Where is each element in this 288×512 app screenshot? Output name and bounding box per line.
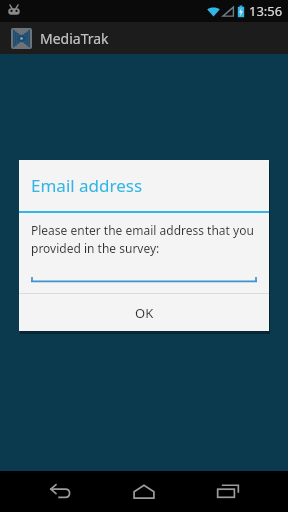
staticText: Email address [31, 174, 143, 197]
button[interactable]: Home [122, 470, 166, 512]
staticText: provided in the survey: [31, 240, 160, 256]
staticText: 13:56 [249, 2, 283, 20]
button[interactable]: Email address input field [31, 273, 257, 285]
staticText: OK [135, 304, 154, 322]
button[interactable]: App icon [11, 28, 32, 49]
button[interactable]: OK [19, 294, 269, 331]
button[interactable]: Back [38, 470, 82, 512]
staticText: Please enter the email address that you [31, 222, 254, 238]
button[interactable]: Recent apps [206, 470, 250, 512]
staticText: MediaTrak [40, 29, 109, 48]
